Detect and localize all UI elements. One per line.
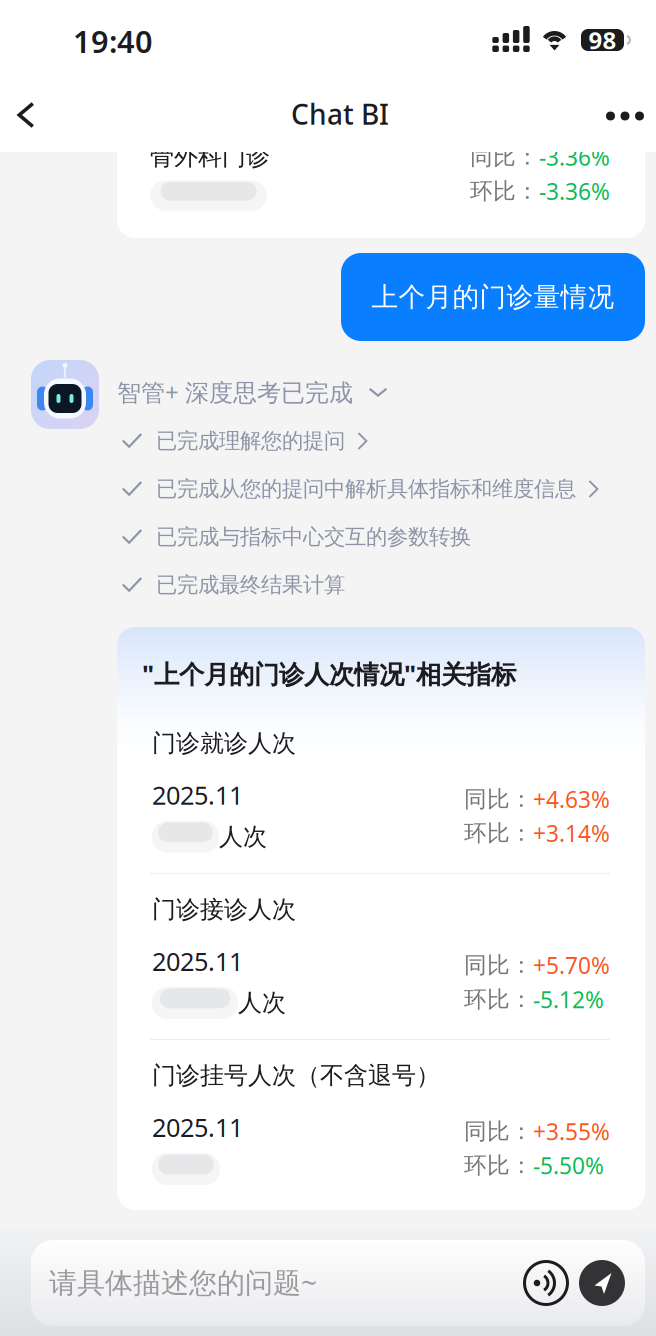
staticText: 2025.11	[152, 778, 243, 812]
staticText: 19:40	[73, 21, 153, 61]
button[interactable]: 已完成理解您的提问	[121, 428, 651, 454]
staticText: 人次	[219, 822, 267, 851]
staticText: 2025.11	[152, 1110, 243, 1144]
staticText: 环比：	[464, 819, 533, 847]
staticText: -5.12%	[533, 984, 604, 1014]
staticText: -3.36%	[539, 142, 610, 172]
staticText: +3.14%	[533, 818, 610, 848]
staticText: 人次	[238, 988, 286, 1018]
staticText: 2025.11	[152, 944, 243, 978]
button[interactable]: 已完成与指标中心交互的参数转换	[121, 524, 651, 550]
button[interactable]: 已完成从您的提问中解析具体指标和维度信息	[121, 476, 651, 502]
staticText: 同比：	[464, 1117, 533, 1145]
staticText: 同比：	[464, 951, 533, 979]
staticText: 骨外科门诊	[150, 142, 270, 171]
staticText: 98	[588, 24, 616, 56]
staticText: 已完成理解您的提问	[156, 428, 345, 454]
button[interactable]: More options	[597, 88, 653, 144]
button[interactable]: 已完成最终结果计算	[121, 572, 651, 598]
button[interactable]: Voice input	[523, 1260, 569, 1306]
staticText: 环比：	[464, 1152, 533, 1179]
staticText: 已完成与指标中心交互的参数转换	[156, 524, 471, 550]
staticText: -5.50%	[533, 1150, 604, 1181]
button[interactable]: Send	[578, 1259, 626, 1307]
staticText: 上个月的门诊量情况	[371, 281, 614, 313]
staticText: Chat BI	[291, 95, 389, 133]
button[interactable]: 智管+ 深度思考已完成	[117, 372, 517, 412]
staticText: -3.36%	[539, 176, 610, 206]
staticText: 请具体描述您的问题~	[49, 1263, 317, 1301]
staticText: 环比：	[464, 985, 533, 1013]
staticText: 门诊接诊人次	[152, 895, 296, 924]
staticText: 同比：	[470, 143, 539, 171]
staticText: +3.55%	[533, 1116, 610, 1146]
staticText: +5.70%	[533, 950, 610, 980]
staticText: 环比：	[470, 177, 539, 205]
button[interactable]: Back	[0, 87, 54, 143]
staticText: 同比：	[464, 785, 533, 813]
staticText: +4.63%	[533, 784, 610, 814]
staticText: 门诊就诊人次	[152, 729, 296, 758]
staticText: "上个月的门诊人次情况"相关指标	[142, 657, 516, 691]
staticText: 已完成最终结果计算	[156, 572, 345, 598]
staticText: 已完成从您的提问中解析具体指标和维度信息	[156, 476, 576, 502]
staticText: 门诊挂号人次（不含退号）	[152, 1061, 440, 1090]
staticText: 智管+ 深度思考已完成	[117, 376, 353, 408]
